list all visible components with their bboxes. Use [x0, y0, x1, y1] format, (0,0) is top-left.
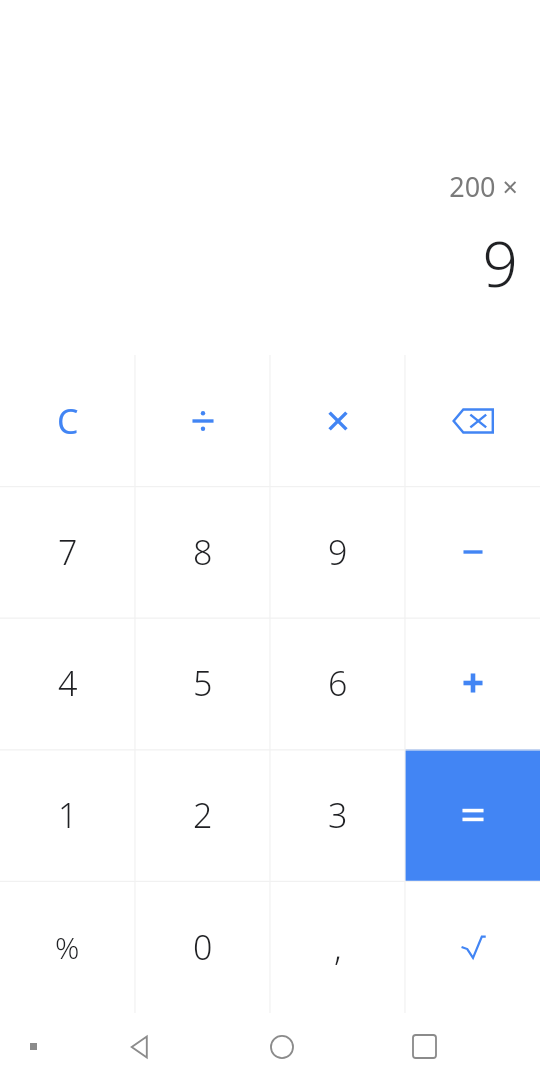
- other: 9: [328, 529, 348, 575]
- other: 3: [328, 792, 348, 838]
- button[interactable]: Keyboard indicator: [0, 1013, 67, 1080]
- button[interactable]: 8: [135, 486, 270, 617]
- staticText: 8: [193, 529, 213, 575]
- staticText: 7: [58, 529, 78, 575]
- button[interactable]: 5: [135, 617, 270, 749]
- other: 5: [193, 660, 213, 706]
- staticText: C: [57, 398, 79, 444]
- button[interactable]: Multiply: [270, 355, 405, 486]
- staticText: 0: [193, 924, 213, 970]
- button[interactable]: 0: [135, 881, 270, 1013]
- other: 1: [58, 792, 78, 838]
- button[interactable]: Recent apps: [353, 1013, 496, 1080]
- other: Plus: [456, 666, 490, 700]
- other: Minus: [456, 535, 490, 569]
- button[interactable]: Minus: [405, 486, 540, 617]
- button[interactable]: 6: [270, 617, 405, 749]
- other: 0: [193, 924, 213, 970]
- button[interactable]: Percent: [0, 881, 135, 1013]
- other: Square root: [460, 934, 486, 960]
- button[interactable]: Square root: [405, 881, 540, 1013]
- button[interactable]: Clear: [0, 355, 135, 486]
- button[interactable]: Back: [67, 1013, 210, 1080]
- button[interactable]: Decimal: [270, 881, 405, 1013]
- other: Backspace: [451, 399, 495, 443]
- staticText: 6: [328, 660, 348, 706]
- button[interactable]: Equals: [405, 749, 540, 881]
- staticText: 1: [58, 792, 78, 838]
- button[interactable]: 1: [0, 749, 135, 881]
- button[interactable]: Plus: [405, 617, 540, 749]
- staticText: 3: [328, 792, 348, 838]
- other: Decimal: [334, 924, 342, 970]
- button[interactable]: Divide: [135, 355, 270, 486]
- staticText: 5: [193, 660, 213, 706]
- other: 6: [328, 660, 348, 706]
- other: 7: [58, 529, 78, 575]
- button[interactable]: Backspace: [405, 355, 540, 486]
- staticText: 200 ×: [449, 168, 518, 205]
- staticText: ,: [334, 924, 342, 970]
- other: 8: [193, 529, 213, 575]
- button[interactable]: 9: [270, 486, 405, 617]
- button[interactable]: 2: [135, 749, 270, 881]
- other: Multiply: [323, 406, 353, 436]
- button[interactable]: 7: [0, 486, 135, 617]
- button[interactable]: 4: [0, 617, 135, 749]
- staticText: 4: [58, 660, 78, 706]
- staticText: %: [55, 927, 80, 968]
- other: 4: [58, 660, 78, 706]
- other: Divide: [186, 404, 220, 438]
- staticText: 9: [482, 221, 518, 305]
- staticText: 9: [328, 529, 348, 575]
- staticText: 2: [193, 792, 213, 838]
- other: 2: [193, 792, 213, 838]
- other: Equals: [405, 749, 540, 881]
- other: Clear: [57, 398, 79, 444]
- button[interactable]: Home: [210, 1013, 353, 1080]
- other: Percent: [55, 927, 80, 968]
- button[interactable]: 3: [270, 749, 405, 881]
